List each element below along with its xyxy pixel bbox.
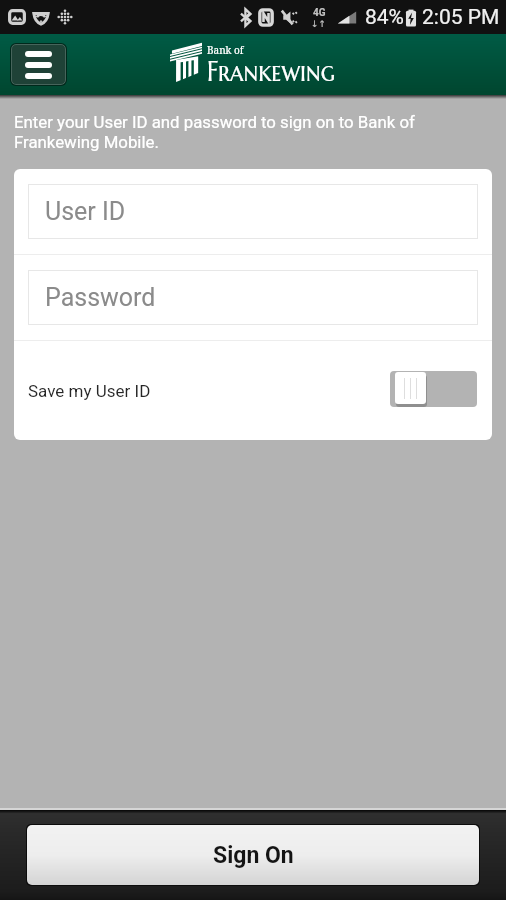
staticText: Enter your User ID and password to sign … — [14, 112, 428, 152]
staticText: ↓↑ — [311, 19, 327, 29]
button[interactable]: Menu — [11, 44, 66, 85]
staticText: 84% — [365, 5, 404, 30]
staticText: 4G — [313, 7, 326, 19]
staticText: Bank of — [207, 43, 244, 57]
staticText: 2:05 PM — [422, 5, 500, 30]
staticText: Password — [45, 283, 156, 312]
staticText: User ID — [45, 197, 126, 226]
button[interactable]: Sign On — [27, 825, 479, 885]
staticText: Save my User ID — [28, 381, 151, 401]
button[interactable]: Save my User ID — [390, 371, 477, 407]
button[interactable]: User ID — [28, 184, 478, 239]
button[interactable]: Password — [28, 270, 478, 325]
staticText: Sign On — [213, 842, 294, 869]
staticText: Frankewing — [207, 54, 335, 90]
